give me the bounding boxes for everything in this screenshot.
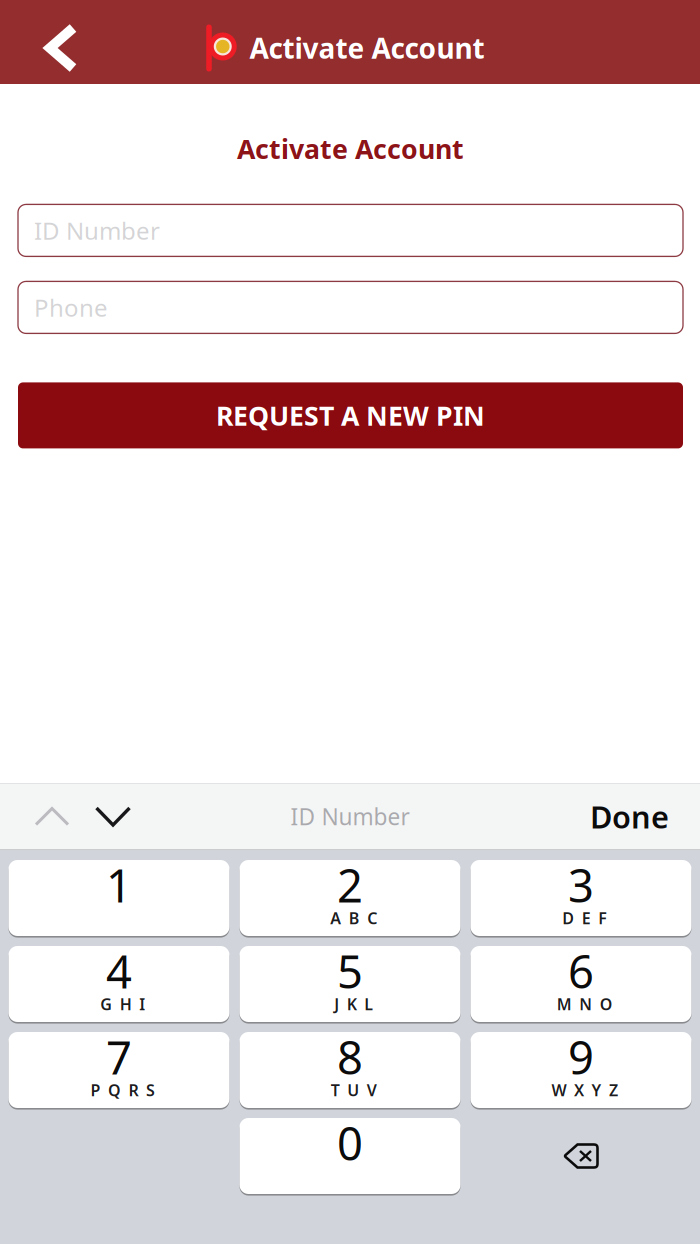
staticText: 5 [337,941,363,1001]
button[interactable]: 9 [470,1032,691,1108]
staticText: ABC [330,907,377,929]
button[interactable]: Phone [18,281,683,333]
button[interactable]: 3 [470,860,691,936]
button[interactable]: 7 [8,1032,229,1108]
staticText: Phone [34,291,108,323]
button[interactable]: 4 [8,946,229,1022]
staticText: REQUEST A NEW PIN [216,398,485,433]
staticText: Activate Account [249,29,484,67]
staticText: Activate Account [237,131,464,166]
button[interactable]: Back [0,0,123,84]
staticText: 0 [337,1113,363,1173]
staticText: JKL [334,993,373,1015]
staticText: 8 [337,1027,363,1087]
staticText: 3 [568,855,594,915]
button[interactable]: Next field [88,783,138,849]
staticText: 1 [106,855,132,915]
staticText: 9 [568,1027,594,1087]
button[interactable]: 2 [239,860,460,936]
button[interactable]: 5 [239,946,460,1022]
button[interactable]: 1 [8,860,229,936]
staticText: 2 [337,855,363,915]
button[interactable]: 8 [239,1032,460,1108]
staticText: 7 [106,1027,132,1087]
staticText: MNO [557,993,613,1015]
staticText: ID Number [290,801,409,831]
button[interactable]: ID Number [18,204,683,256]
button[interactable]: REQUEST A NEW PIN [18,382,683,448]
staticText: DEF [562,907,607,929]
button[interactable]: Done [590,783,700,849]
staticText: WXYZ [551,1079,618,1101]
staticText: 4 [106,941,132,1001]
staticText: Done [590,796,669,837]
button[interactable]: 6 [470,946,691,1022]
staticText: PQRS [90,1079,155,1101]
staticText: TUV [331,1079,377,1101]
button[interactable]: 0 [239,1118,460,1194]
staticText: ID Number [34,214,160,246]
staticText: GHI [100,993,145,1015]
button[interactable]: Delete [470,1118,691,1194]
staticText: 6 [568,941,594,1001]
button[interactable]: Previous field [27,783,77,849]
